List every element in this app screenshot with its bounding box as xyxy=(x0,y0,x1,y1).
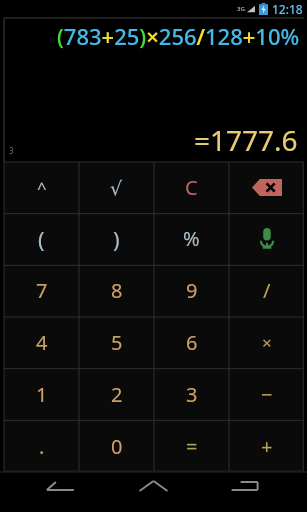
staticText: 3G xyxy=(237,5,245,13)
button[interactable]: 1 xyxy=(4,368,79,420)
staticText: ) xyxy=(113,224,120,254)
staticText: / xyxy=(263,277,271,304)
button[interactable]: Home xyxy=(103,472,205,512)
button[interactable]: 2 xyxy=(79,368,154,420)
staticText: 3 xyxy=(9,145,14,156)
button[interactable]: 9 xyxy=(154,264,229,316)
staticText: (783+25)×256/128+10% xyxy=(57,21,300,51)
staticText: = xyxy=(186,433,198,460)
staticText: . xyxy=(39,433,45,460)
button[interactable]: . xyxy=(4,420,79,472)
button[interactable]: ) xyxy=(79,213,154,264)
staticText: × xyxy=(262,331,272,354)
button[interactable]: C xyxy=(154,162,229,213)
staticText: 5 xyxy=(111,329,123,356)
button[interactable]: 0 xyxy=(79,420,154,472)
staticText: 1 xyxy=(36,381,48,408)
button[interactable]: / xyxy=(229,264,304,316)
button[interactable]: Backspace xyxy=(229,162,304,213)
staticText: ( xyxy=(38,224,45,254)
staticText: C xyxy=(185,174,198,201)
staticText: =1777.6 xyxy=(194,121,298,159)
button[interactable]: 8 xyxy=(79,264,154,316)
staticText: 2 xyxy=(111,381,123,408)
staticText: 8 xyxy=(111,277,123,304)
staticText: 9 xyxy=(186,277,198,304)
button[interactable]: × xyxy=(229,316,304,368)
staticText: 4 xyxy=(36,329,48,356)
button[interactable]: ^ xyxy=(4,162,79,213)
button[interactable]: 7 xyxy=(4,264,79,316)
staticText: % xyxy=(183,225,200,252)
button[interactable]: Back xyxy=(0,472,103,512)
button[interactable]: 4 xyxy=(4,316,79,368)
button[interactable]: − xyxy=(229,368,304,420)
button[interactable]: √ xyxy=(79,162,154,213)
staticText: 7 xyxy=(36,277,48,304)
staticText: 3 xyxy=(186,381,198,408)
button[interactable]: Voice input xyxy=(229,213,304,264)
staticText: 6 xyxy=(186,329,198,356)
button[interactable]: 6 xyxy=(154,316,229,368)
staticText: ^ xyxy=(37,176,47,199)
staticText: − xyxy=(261,381,273,408)
button[interactable]: 3 xyxy=(154,368,229,420)
button[interactable]: 5 xyxy=(79,316,154,368)
button[interactable]: + xyxy=(229,420,304,472)
button[interactable]: = xyxy=(154,420,229,472)
staticText: + xyxy=(261,433,273,460)
button[interactable]: % xyxy=(154,213,229,264)
staticText: 12:18 xyxy=(272,1,303,17)
staticText: √ xyxy=(110,177,123,199)
staticText: 0 xyxy=(111,433,123,460)
button[interactable]: ( xyxy=(4,213,79,264)
button[interactable]: Recent apps xyxy=(205,472,307,512)
